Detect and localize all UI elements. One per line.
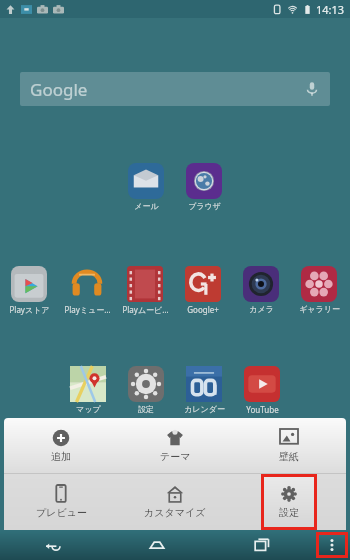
staticText: 設定 [138,404,154,414]
staticText: プレビュー [36,506,87,519]
button[interactable]: カメラ [232,266,290,314]
button[interactable]: Recent apps [209,530,314,560]
button[interactable]: テーマ [118,418,232,473]
button[interactable]: ギャラリー [290,266,348,314]
staticText: Playミュー… [64,304,111,315]
other: Voice search [304,81,320,97]
button[interactable]: プレビュー [4,474,118,530]
button[interactable]: カレンダー [175,366,233,414]
button[interactable]: 追加 [4,418,118,473]
staticText: YouTube [246,404,279,415]
button[interactable]: マップ [59,366,117,414]
staticText: 追加 [51,450,71,463]
staticText: Google+ [187,304,219,315]
staticText: カレンダー [184,404,225,414]
staticText: テーマ [160,450,191,463]
button[interactable]: Google [20,72,330,106]
staticText: 設定 [279,506,299,519]
button[interactable]: Playストア [0,266,58,315]
button[interactable]: 設定 [264,477,314,527]
staticText: Google [30,78,88,101]
button[interactable]: YouTube [233,366,291,415]
staticText: カメラ [249,304,274,314]
button[interactable]: Playムービ… [116,266,174,315]
staticText: カスタマイズ [144,506,206,519]
button[interactable]: カスタマイズ [118,474,232,530]
staticText: メール [134,201,159,211]
staticText: 壁紙 [279,450,299,463]
button[interactable]: 壁紙 [232,418,346,473]
staticText: ブラウザ [188,201,221,211]
staticText: Playストア [9,304,50,315]
button[interactable]: Menu [319,535,345,555]
staticText: ギャラリー [299,304,340,314]
button[interactable]: 設定 [117,366,175,414]
button[interactable]: Back [0,530,104,560]
button[interactable]: Playミュー… [58,266,116,315]
button[interactable]: Google+ [174,266,232,315]
button[interactable]: Home [104,530,209,560]
button[interactable]: ブラウザ [175,163,233,211]
button[interactable]: メール [117,163,175,211]
staticText: マップ [76,404,101,414]
staticText: 14:13 [316,2,345,17]
staticText: Playムービ… [122,304,169,315]
